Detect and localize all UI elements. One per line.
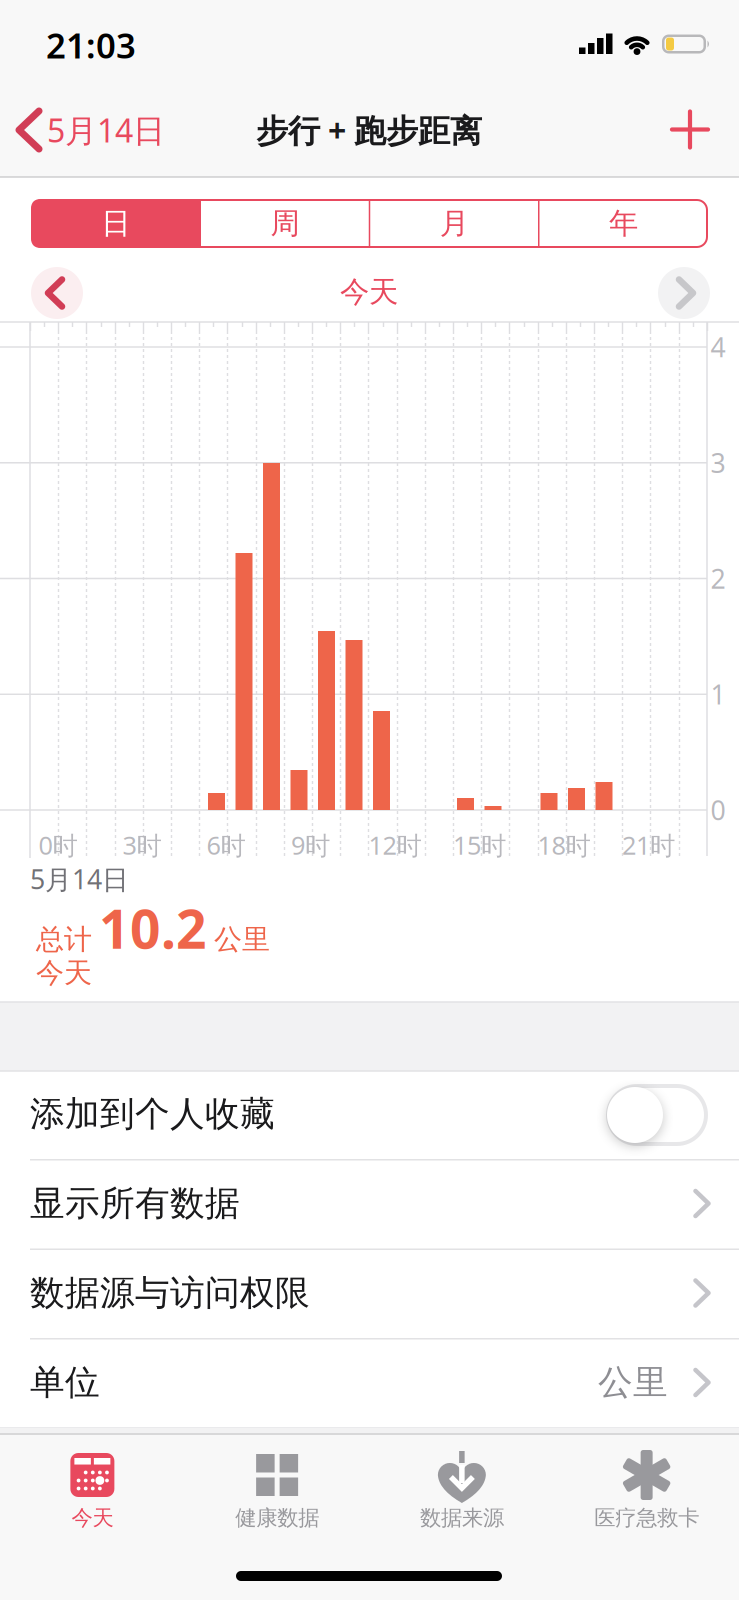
button[interactable]: 年 bbox=[539, 199, 708, 248]
staticText: 4 bbox=[710, 329, 725, 365]
staticText: 数据来源 bbox=[420, 1505, 504, 1531]
button[interactable]: 今天 bbox=[0, 1434, 185, 1574]
button[interactable]: 单位 bbox=[0, 1338, 739, 1427]
staticText: 添加到个人收藏 bbox=[30, 1093, 275, 1135]
button[interactable]: 前一天 bbox=[31, 267, 83, 319]
staticText: 数据源与访问权限 bbox=[30, 1272, 310, 1314]
staticText: 日 bbox=[101, 205, 130, 241]
staticText: 年 bbox=[609, 205, 638, 241]
staticText: 总计 bbox=[36, 922, 92, 957]
button[interactable]: 添加到个人收藏 bbox=[606, 1084, 708, 1146]
staticText: 今天 bbox=[71, 1505, 113, 1531]
staticText: 周 bbox=[270, 205, 299, 241]
staticText: 医疗急救卡 bbox=[594, 1505, 699, 1531]
staticText: 今天 bbox=[36, 956, 92, 990]
staticText: 9时 bbox=[291, 828, 330, 862]
staticText: 3时 bbox=[122, 828, 161, 862]
staticText: 5月14日 bbox=[30, 861, 129, 897]
button[interactable]: 数据源与访问权限 bbox=[0, 1248, 739, 1337]
staticText: 今天 bbox=[340, 274, 398, 310]
staticText: 12时 bbox=[368, 828, 421, 862]
staticText: 健康数据 bbox=[235, 1505, 319, 1531]
staticText: 18时 bbox=[537, 828, 590, 862]
button[interactable]: 月 bbox=[369, 199, 539, 248]
staticText: 6时 bbox=[206, 828, 245, 862]
staticText: 5月14日 bbox=[47, 109, 165, 151]
button[interactable]: 后一天 bbox=[658, 267, 710, 319]
staticText: 3 bbox=[710, 445, 725, 480]
staticText: 2 bbox=[710, 561, 725, 596]
button[interactable]: 5月14日 bbox=[0, 98, 210, 162]
staticText: 15时 bbox=[453, 828, 506, 862]
staticText: 0 bbox=[710, 792, 725, 828]
staticText: 公里 bbox=[598, 1361, 668, 1404]
staticText: 21:03 bbox=[46, 22, 136, 68]
button[interactable]: 添加数据 bbox=[665, 104, 715, 154]
staticText: 21时 bbox=[622, 828, 675, 862]
staticText: 月 bbox=[440, 205, 469, 241]
staticText: 10.2 bbox=[99, 893, 207, 963]
button[interactable]: 日 bbox=[31, 199, 200, 248]
button[interactable]: 显示所有数据 bbox=[0, 1159, 739, 1248]
staticText: 0时 bbox=[38, 828, 77, 862]
staticText: 公里 bbox=[214, 922, 270, 957]
button[interactable]: 医疗急救卡 bbox=[554, 1434, 739, 1574]
staticText: 1 bbox=[710, 676, 725, 712]
button[interactable]: 健康数据 bbox=[185, 1434, 370, 1574]
staticText: 步行 + 跑步距离 bbox=[256, 109, 482, 151]
staticText: 显示所有数据 bbox=[30, 1182, 240, 1225]
button[interactable]: 数据来源 bbox=[369, 1434, 554, 1574]
staticText: 单位 bbox=[30, 1361, 100, 1404]
button[interactable]: 周 bbox=[200, 199, 369, 248]
